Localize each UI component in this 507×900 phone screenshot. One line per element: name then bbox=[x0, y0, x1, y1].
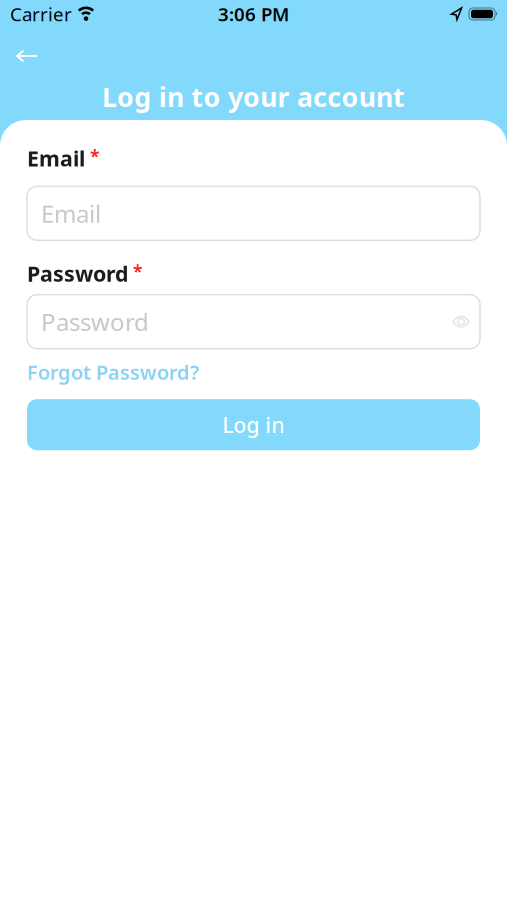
staticText: Email bbox=[41, 197, 101, 229]
button[interactable]: Log in bbox=[27, 399, 480, 450]
staticText: Password bbox=[27, 259, 128, 288]
staticText: Forgot Password? bbox=[27, 359, 199, 385]
staticText: * bbox=[133, 260, 142, 283]
button[interactable]: Show password bbox=[452, 306, 470, 338]
staticText: * bbox=[90, 145, 99, 168]
staticText: Log in to your account bbox=[102, 79, 405, 114]
staticText: Password bbox=[41, 306, 149, 338]
button[interactable]: Back bbox=[10, 44, 43, 68]
staticText: Carrier bbox=[10, 2, 72, 26]
staticText: 3:06 PM bbox=[218, 2, 289, 26]
staticText: Log in bbox=[222, 411, 284, 439]
button[interactable]: Forgot Password? bbox=[27, 359, 199, 385]
staticText: Email bbox=[27, 144, 85, 172]
